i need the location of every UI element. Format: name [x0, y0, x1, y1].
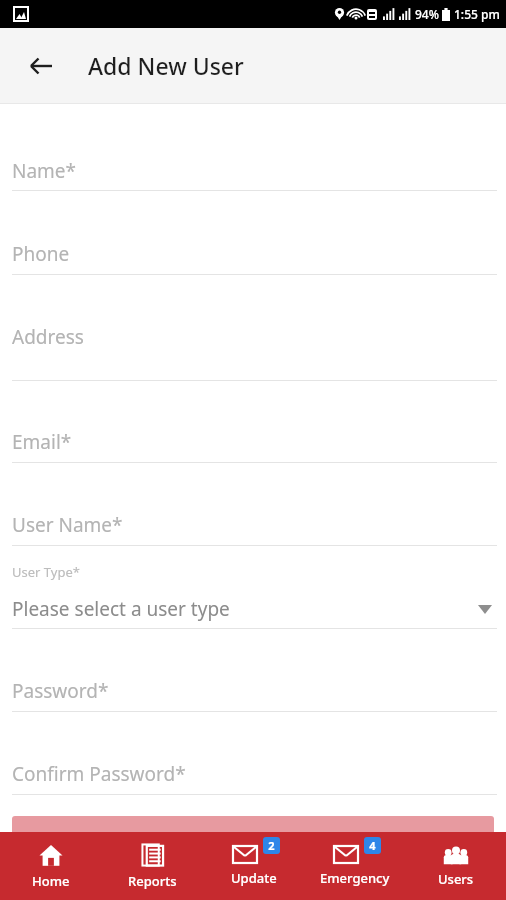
button[interactable]: Phone [0, 239, 506, 274]
button[interactable] [12, 816, 494, 856]
button[interactable]: Messages [304, 832, 405, 900]
staticText: Address [12, 324, 84, 350]
staticText: Reports [128, 872, 177, 890]
button[interactable]: Users [405, 832, 506, 900]
staticText: User Type* [12, 563, 80, 581]
button[interactable]: Email* [0, 427, 506, 462]
staticText: Add New User [88, 50, 244, 81]
staticText: Users [438, 870, 474, 888]
other: Users [443, 845, 469, 865]
staticText: 1:55 pm [454, 6, 500, 22]
staticText: Update [231, 869, 277, 887]
button[interactable]: User Name* [0, 510, 506, 545]
staticText: 94% [415, 6, 439, 22]
staticText: Confirm Password* [12, 761, 186, 787]
staticText: Emergency [320, 869, 390, 887]
other: Home [39, 843, 63, 867]
button[interactable]: Messages [203, 832, 304, 900]
other: Messages [333, 845, 359, 864]
staticText: Home [32, 872, 70, 890]
staticText: Please select a user type [12, 596, 230, 622]
staticText: Password* [12, 678, 109, 704]
staticText: Phone [12, 241, 70, 267]
staticText: 2 [268, 838, 275, 853]
button[interactable]: Name* [0, 156, 506, 190]
staticText: 4 [369, 838, 376, 853]
button[interactable]: Confirm Password* [0, 759, 506, 794]
button[interactable]: Home [0, 832, 102, 900]
staticText: Email* [12, 429, 72, 455]
other: Messages [232, 845, 258, 864]
button[interactable]: Address [0, 322, 506, 380]
button[interactable]: Back [20, 45, 62, 87]
button[interactable]: Please select a user type [0, 588, 506, 630]
button[interactable]: Password* [0, 676, 506, 711]
button[interactable]: Reports [102, 832, 203, 900]
staticText: User Name* [12, 512, 123, 538]
other: Reports [141, 843, 165, 867]
staticText: Name* [12, 158, 77, 184]
